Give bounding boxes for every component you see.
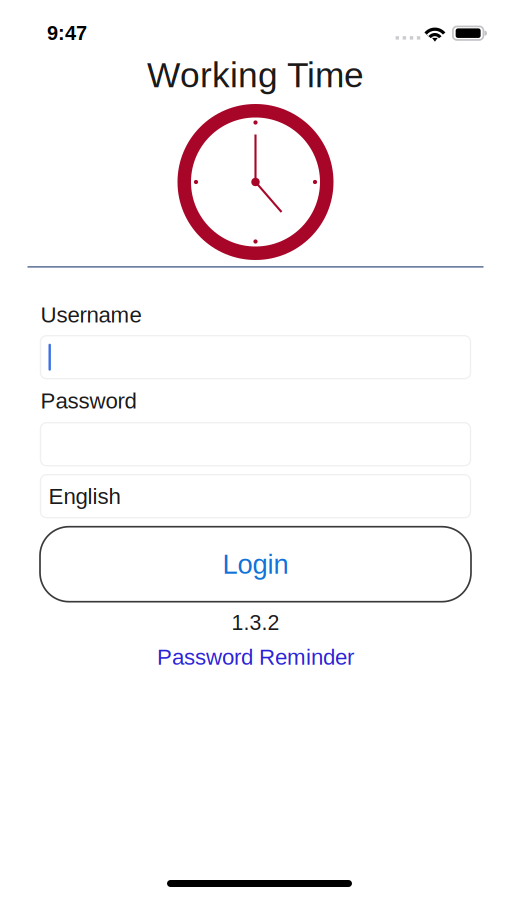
button[interactable]: English	[40, 466, 470, 518]
button[interactable]: Login	[40, 518, 471, 602]
staticText: 1.3.2	[231, 611, 279, 634]
staticText: Username	[40, 302, 141, 327]
staticText: Working Time	[147, 55, 364, 95]
button[interactable]: Password Reminder	[157, 634, 354, 669]
staticText: Password	[40, 388, 136, 413]
staticText: English	[48, 484, 120, 509]
staticText: Login	[222, 549, 288, 579]
staticText: Password Reminder	[157, 644, 354, 669]
staticText: 9:47	[47, 22, 87, 44]
